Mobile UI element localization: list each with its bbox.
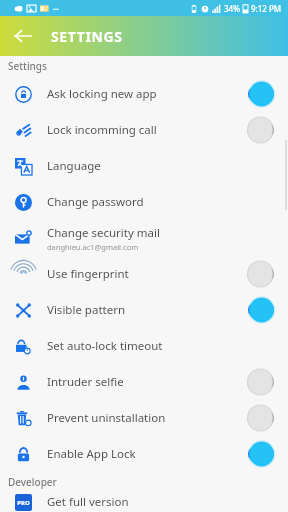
staticText: Intruder selfie bbox=[47, 374, 124, 390]
staticText: Lock incomming call bbox=[47, 122, 157, 138]
staticText: Set auto-lock timeout bbox=[47, 338, 163, 354]
button[interactable]: Language bbox=[0, 148, 288, 184]
button[interactable]: Toggle off bbox=[246, 407, 276, 429]
staticText: Developer bbox=[8, 475, 57, 489]
button[interactable]: Lock incomming call bbox=[0, 112, 288, 148]
button[interactable]: Enable App Lock bbox=[0, 436, 288, 472]
staticText: Change security mail bbox=[47, 225, 160, 241]
staticText: ... bbox=[53, 3, 59, 13]
button[interactable]: Toggle on bbox=[246, 299, 276, 321]
staticText: 9:12 PM bbox=[251, 3, 282, 14]
button[interactable]: Prevent uninstallation bbox=[0, 400, 288, 436]
button[interactable]: Back bbox=[6, 19, 40, 53]
staticText: Change password bbox=[47, 194, 144, 210]
staticText: Language bbox=[47, 158, 101, 174]
button[interactable]: Toggle off bbox=[246, 119, 276, 141]
staticText: Use fingerprint bbox=[47, 266, 129, 282]
button[interactable]: Toggle off bbox=[246, 263, 276, 285]
staticText: Prevent uninstallation bbox=[47, 410, 166, 426]
button[interactable]: PRO bbox=[0, 492, 288, 512]
staticText: PRO bbox=[17, 499, 30, 507]
staticText: 34% bbox=[224, 3, 240, 14]
button[interactable]: Ask locking new app bbox=[0, 76, 288, 112]
staticText: Visible pattern bbox=[47, 302, 126, 318]
staticText: Get full version bbox=[47, 494, 129, 510]
button[interactable]: Set auto-lock timeout bbox=[0, 328, 288, 364]
staticText: SETTINGS bbox=[51, 27, 123, 46]
button[interactable]: Toggle on bbox=[246, 83, 276, 105]
button[interactable]: Intruder selfie bbox=[0, 364, 288, 400]
button[interactable]: Change security mail bbox=[0, 220, 288, 256]
staticText: Enable App Lock bbox=[47, 446, 136, 462]
staticText: Ask locking new app bbox=[47, 86, 157, 102]
button[interactable]: Toggle on bbox=[246, 443, 276, 465]
staticText: danghieu.ac1@gmail.com bbox=[47, 242, 139, 252]
button[interactable]: Change password bbox=[0, 184, 288, 220]
button[interactable]: Visible pattern bbox=[0, 292, 288, 328]
staticText: Settings bbox=[8, 59, 47, 73]
button[interactable]: Toggle off bbox=[246, 371, 276, 393]
button[interactable]: Use fingerprint bbox=[0, 256, 288, 292]
